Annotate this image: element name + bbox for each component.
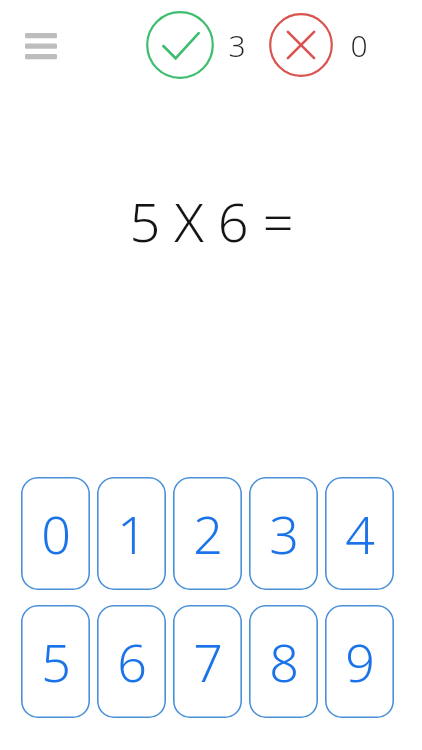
staticText: 0: [350, 25, 368, 66]
button[interactable]: Correct answers: [146, 11, 214, 79]
button[interactable]: 5: [21, 605, 90, 718]
button[interactable]: 4: [325, 477, 394, 590]
staticText: 8: [269, 626, 299, 697]
staticText: 5: [41, 626, 71, 697]
button[interactable]: Wrong answers: [269, 13, 333, 77]
button[interactable]: 0: [21, 477, 90, 590]
staticText: 4: [345, 498, 375, 569]
staticText: 3: [228, 25, 246, 66]
staticText: 2: [193, 498, 223, 569]
button[interactable]: 7: [173, 605, 242, 718]
staticText: 7: [193, 626, 223, 697]
button[interactable]: 2: [173, 477, 242, 590]
staticText: 0: [41, 498, 71, 569]
staticText: 5 X 6 =: [129, 184, 294, 244]
button[interactable]: 8: [249, 605, 318, 718]
button[interactable]: Menu: [14, 22, 68, 68]
button[interactable]: 3: [249, 477, 318, 590]
staticText: 3: [269, 498, 299, 569]
button[interactable]: 1: [97, 477, 166, 590]
staticText: 6: [117, 626, 147, 697]
button[interactable]: 6: [97, 605, 166, 718]
staticText: 9: [345, 626, 375, 697]
staticText: 1: [117, 498, 147, 569]
button[interactable]: 9: [325, 605, 394, 718]
